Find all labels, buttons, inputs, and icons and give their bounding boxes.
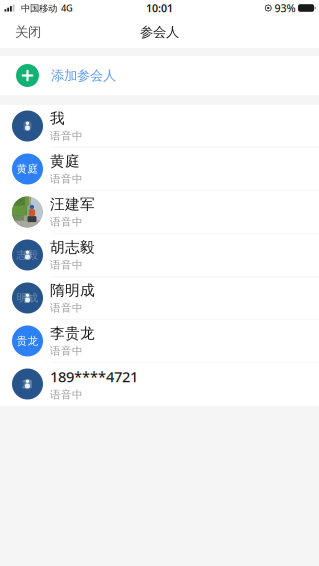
button[interactable]: 关闭 (0, 16, 55, 48)
staticText: 93% (271, 1, 295, 15)
staticText: 志毅 (16, 248, 38, 261)
button[interactable]: 汪建军 (0, 191, 319, 234)
staticText: 李贵龙 (50, 324, 95, 342)
staticText: 添加参会人 (51, 67, 116, 84)
staticText: 关闭 (15, 24, 41, 40)
staticText: 21 (21, 377, 33, 391)
staticText: 语音中 (50, 258, 83, 272)
staticText: 贵龙 (16, 334, 38, 347)
staticText: 隋明成 (50, 281, 95, 299)
button[interactable]: 黄庭 (0, 148, 319, 191)
button[interactable]: 明成 (0, 277, 319, 320)
staticText: 汪建军 (50, 195, 95, 213)
staticText: 我 (50, 109, 65, 127)
button[interactable] (0, 105, 319, 148)
button[interactable]: 添加参会人 (0, 56, 319, 95)
staticText: 中国移动 4G (15, 2, 73, 14)
staticText: 语音中 (50, 301, 83, 315)
staticText: 语音中 (50, 388, 83, 401)
staticText: 10:01 (146, 1, 173, 15)
staticText: 参会人 (140, 24, 179, 40)
staticText: 语音中 (50, 344, 83, 358)
staticText: 黄庭 (50, 152, 80, 170)
button[interactable]: 贵龙 (0, 320, 319, 363)
staticText: 胡志毅 (50, 238, 95, 256)
button[interactable]: 志毅 (0, 234, 319, 277)
staticText: 明成 (16, 291, 38, 304)
staticText: 189****4721 (50, 367, 138, 386)
staticText: 语音中 (50, 215, 83, 229)
staticText: 黄庭 (16, 162, 38, 175)
staticText: 语音中 (50, 129, 83, 143)
staticText: 语音中 (50, 172, 83, 186)
button[interactable]: 21 (0, 363, 319, 406)
